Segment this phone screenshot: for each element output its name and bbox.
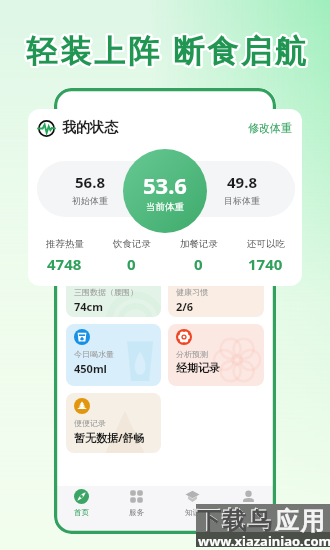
- button[interactable]: 健康习惯: [168, 245, 264, 317]
- button[interactable]: 分析预测: [168, 324, 264, 386]
- staticText: 轻装上阵 断食启航: [25, 30, 309, 72]
- staticText: 轻装上阵 断食启航: [26, 29, 310, 71]
- staticText: 轻装上阵 断食启航: [27, 29, 311, 71]
- staticText: 2/6: [176, 299, 194, 314]
- staticText: 加餐记录: [180, 238, 218, 250]
- staticText: 下载鸟: [197, 506, 274, 536]
- staticText: www.xiazainiao.com: [198, 532, 330, 550]
- staticText: 4748: [47, 254, 82, 274]
- staticText: 目标体重: [224, 195, 260, 206]
- staticText: 轻装上阵 断食启航: [27, 28, 311, 70]
- button[interactable]: 三围数据（腰围）: [66, 245, 161, 317]
- staticText: 轻装上阵 断食启航: [26, 28, 310, 70]
- button[interactable]: 便便记录: [66, 393, 161, 453]
- staticText: 74cm: [74, 299, 103, 314]
- button[interactable]: 知识: [164, 486, 220, 534]
- staticText: 轻装上阵 断食启航: [28, 29, 312, 71]
- staticText: 轻装上阵 断食启航: [26, 29, 310, 71]
- staticText: 450ml: [74, 361, 107, 376]
- button[interactable]: 修改体重: [248, 121, 292, 135]
- staticText: 56.8: [75, 172, 105, 192]
- button[interactable]: 53.6: [123, 149, 207, 233]
- staticText: 经期记录: [176, 361, 220, 375]
- staticText: 轻装上阵 断食启航: [26, 31, 310, 73]
- staticText: 我的: [241, 508, 256, 517]
- staticText: 49.8: [227, 172, 257, 192]
- staticText: 分析预测: [176, 349, 208, 359]
- staticText: 轻装上阵 断食启航: [28, 30, 312, 72]
- staticText: 饮食记录: [113, 238, 151, 250]
- staticText: 轻装上阵 断食启航: [25, 29, 309, 71]
- staticText: 轻装上阵 断食启航: [26, 27, 310, 69]
- staticText: 轻装上阵 断食启航: [24, 29, 308, 71]
- staticText: 推荐热量: [46, 238, 84, 250]
- staticText: 还可以吃: [247, 238, 285, 250]
- staticText: 我的状态: [62, 119, 118, 137]
- staticText: 首页: [74, 508, 89, 517]
- staticText: 三围数据（腰围）: [74, 287, 138, 297]
- button[interactable]: 我的: [220, 486, 276, 534]
- staticText: 轻装上阵 断食启航: [24, 30, 308, 72]
- staticText: 当前体重: [146, 201, 184, 213]
- staticText: 知识: [185, 508, 200, 517]
- staticText: 服务: [129, 508, 144, 517]
- staticText: 轻装上阵 断食启航: [25, 31, 309, 73]
- staticText: 轻装上阵 断食启航: [27, 30, 311, 72]
- staticText: 轻装上阵 断食启航: [26, 30, 310, 72]
- staticText: 轻装上阵 断食启航: [25, 28, 309, 70]
- staticText: 轻装上阵 断食启航: [24, 28, 308, 70]
- staticText: 健康习惯: [176, 287, 208, 297]
- staticText: 修改体重: [248, 121, 292, 135]
- staticText: 53.6: [143, 170, 187, 200]
- staticText: 1740: [248, 254, 283, 274]
- staticText: 下载鸟: [196, 505, 273, 535]
- staticText: 0: [194, 254, 203, 274]
- staticText: 便便记录: [74, 418, 106, 428]
- staticText: 初始体重: [72, 195, 108, 206]
- staticText: 轻装上阵 断食启航: [28, 28, 312, 70]
- button[interactable]: 首页: [54, 486, 109, 534]
- staticText: 0: [127, 254, 136, 274]
- staticText: 应用: [274, 506, 325, 536]
- staticText: 轻装上阵 断食启航: [27, 27, 311, 69]
- staticText: 今日喝水量: [74, 349, 114, 359]
- button[interactable]: 服务: [109, 486, 164, 534]
- staticText: 轻装上阵 断食启航: [27, 31, 311, 73]
- staticText: 轻装上阵 断食启航: [25, 27, 309, 69]
- button[interactable]: 今日喝水量: [66, 324, 161, 386]
- staticText: 暂无数据/舒畅: [74, 430, 145, 445]
